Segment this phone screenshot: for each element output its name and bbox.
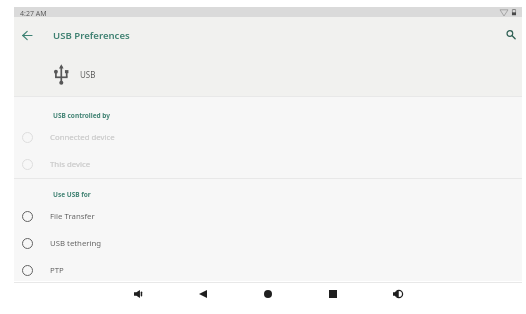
staticText: USB controlled by — [53, 111, 111, 120]
button[interactable]: Recents — [323, 284, 343, 304]
button[interactable]: Back — [193, 284, 213, 304]
button[interactable]: PTP — [14, 257, 522, 284]
button[interactable]: Back — [14, 22, 40, 48]
staticText: USB — [80, 69, 96, 80]
button[interactable]: USB tethering — [14, 230, 522, 257]
staticText: File Transfer — [50, 211, 95, 222]
staticText: Use USB for — [53, 190, 91, 199]
staticText: This device — [50, 159, 91, 170]
button[interactable]: Search — [497, 21, 523, 47]
button[interactable]: Home — [258, 284, 278, 304]
staticText: Connected device — [50, 132, 115, 143]
button[interactable]: Connected device — [14, 124, 522, 151]
staticText: USB tethering — [50, 238, 102, 249]
staticText: 4:27 AM — [20, 9, 47, 19]
button[interactable]: USB — [14, 58, 522, 90]
button[interactable]: Volume down — [128, 284, 148, 304]
staticText: PTP — [50, 265, 64, 276]
button[interactable]: Volume up — [387, 284, 407, 304]
button[interactable]: File Transfer — [14, 203, 522, 230]
staticText: USB Preferences — [53, 29, 130, 42]
